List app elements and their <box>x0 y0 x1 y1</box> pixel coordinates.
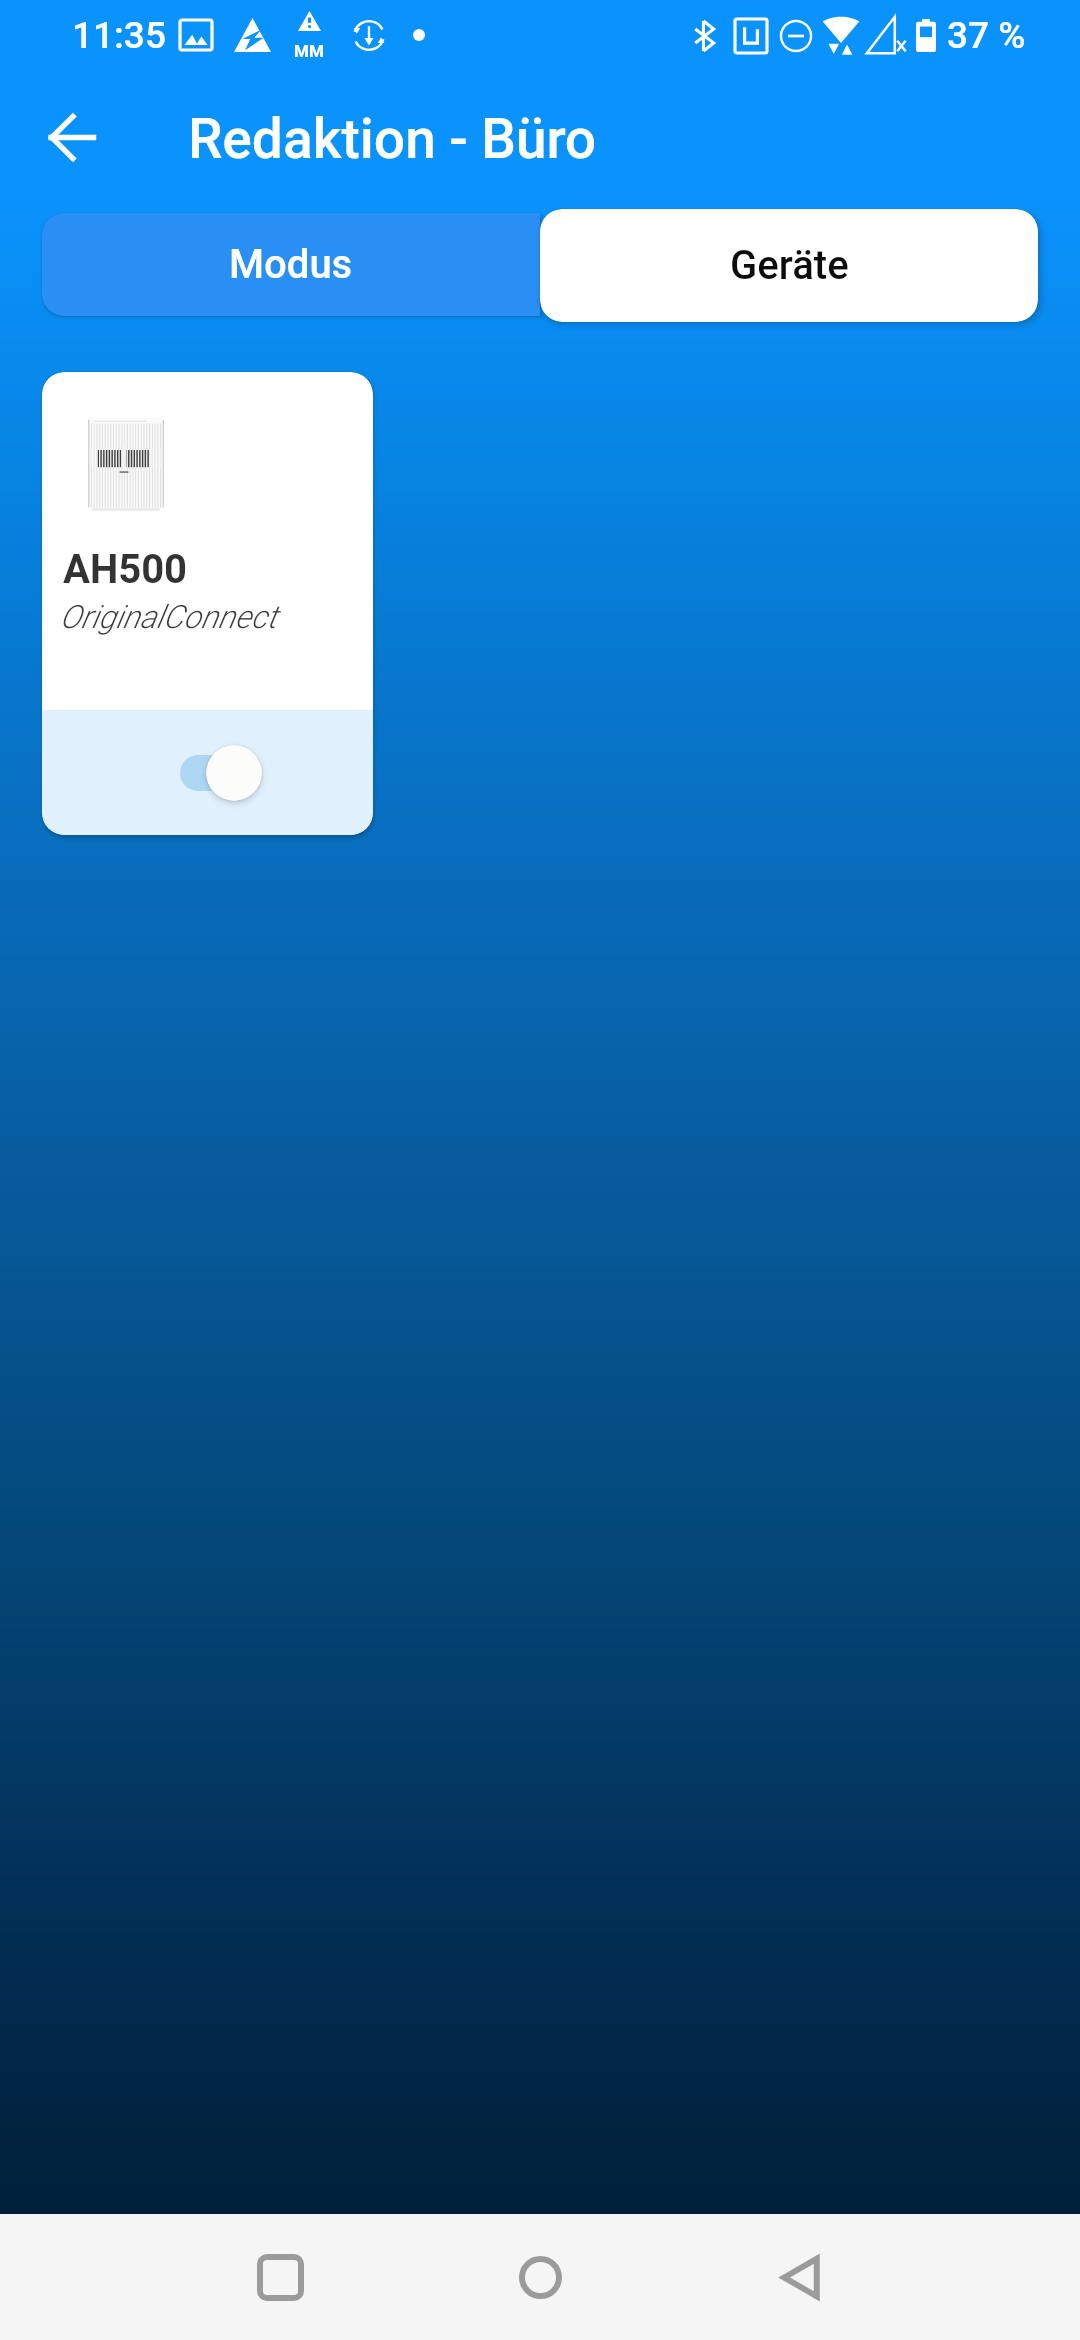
staticText: AH500 <box>63 546 188 593</box>
staticText: Modus <box>229 241 353 288</box>
button[interactable]: Home <box>440 2214 640 2340</box>
staticText: OriginalConnect <box>60 598 278 636</box>
button[interactable]: AH500 <box>42 372 373 835</box>
button[interactable]: Toggle device power <box>180 742 292 804</box>
button[interactable]: Back <box>24 89 120 185</box>
staticText: Redaktion - Büro <box>188 107 597 171</box>
button[interactable]: Back <box>700 2214 900 2340</box>
button[interactable]: Modus <box>42 213 540 316</box>
button[interactable]: Recent apps <box>180 2214 380 2340</box>
staticText: Geräte <box>730 242 849 289</box>
staticText: 37 % <box>947 14 1026 57</box>
staticText: MM <box>294 41 324 61</box>
button[interactable]: Geräte <box>540 209 1038 322</box>
staticText: 11:35 <box>72 14 166 57</box>
